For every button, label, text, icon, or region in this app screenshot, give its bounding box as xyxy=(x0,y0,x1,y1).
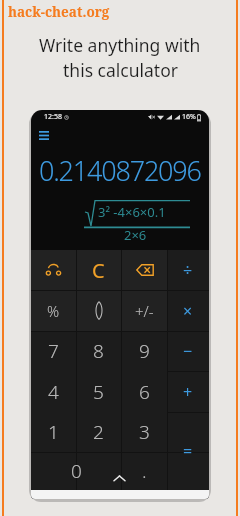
staticText: + xyxy=(183,381,193,403)
staticText: 12:58 xyxy=(44,112,62,122)
button[interactable]: 7 xyxy=(31,331,76,371)
staticText: 9 xyxy=(139,338,150,364)
staticText: 5 xyxy=(93,379,104,405)
staticText: +/- xyxy=(135,301,154,321)
staticText: ÷ xyxy=(183,259,193,281)
button[interactable]: 0 xyxy=(31,452,122,490)
staticText: 2×6 xyxy=(124,226,147,244)
staticText: 3² -4×6×0.1 xyxy=(98,203,166,221)
button[interactable]: Menu xyxy=(34,125,54,145)
button[interactable]: 5 xyxy=(76,371,121,412)
staticText: Write anything with xyxy=(39,33,201,57)
staticText: 8 xyxy=(93,338,104,364)
button[interactable]: +/- xyxy=(122,290,167,331)
button[interactable]: + xyxy=(167,371,209,412)
staticText: × xyxy=(183,300,193,322)
staticText: 1 xyxy=(48,419,59,445)
staticText: . xyxy=(142,458,147,484)
staticText: 0 xyxy=(71,458,82,484)
button[interactable]: C xyxy=(76,250,121,290)
button[interactable]: 8 xyxy=(76,331,121,371)
staticText: 0.2140872096 xyxy=(39,152,201,189)
button[interactable]: 1 xyxy=(31,412,76,452)
staticText: 7 xyxy=(48,338,59,364)
staticText: 6 xyxy=(139,379,150,405)
button[interactable]: 2 xyxy=(76,412,121,452)
staticText: this calculator xyxy=(63,58,178,82)
staticText: 4 xyxy=(48,379,59,405)
staticText: 3 xyxy=(139,419,150,445)
staticText: C xyxy=(92,257,105,284)
staticText: = xyxy=(183,440,193,462)
button[interactable]: 4 xyxy=(31,371,76,412)
staticText: % xyxy=(47,301,60,321)
staticText: − xyxy=(183,340,193,362)
button[interactable]: Delete xyxy=(122,250,167,290)
button[interactable]: % xyxy=(31,290,76,331)
button[interactable]: × xyxy=(167,290,209,331)
button[interactable]: 3 xyxy=(122,412,167,452)
button[interactable]: − xyxy=(167,331,209,371)
button[interactable]: 9 xyxy=(122,331,167,371)
staticText: 16% xyxy=(182,112,196,122)
staticText: 2 xyxy=(93,419,104,445)
button[interactable]: . xyxy=(122,452,167,490)
button[interactable]: 6 xyxy=(122,371,167,412)
button[interactable]: = xyxy=(167,412,209,490)
button[interactable]: Graph xyxy=(31,250,76,290)
button[interactable]: ÷ xyxy=(167,250,209,290)
button[interactable] xyxy=(76,290,121,331)
staticText: hack-cheat.org xyxy=(8,3,110,21)
